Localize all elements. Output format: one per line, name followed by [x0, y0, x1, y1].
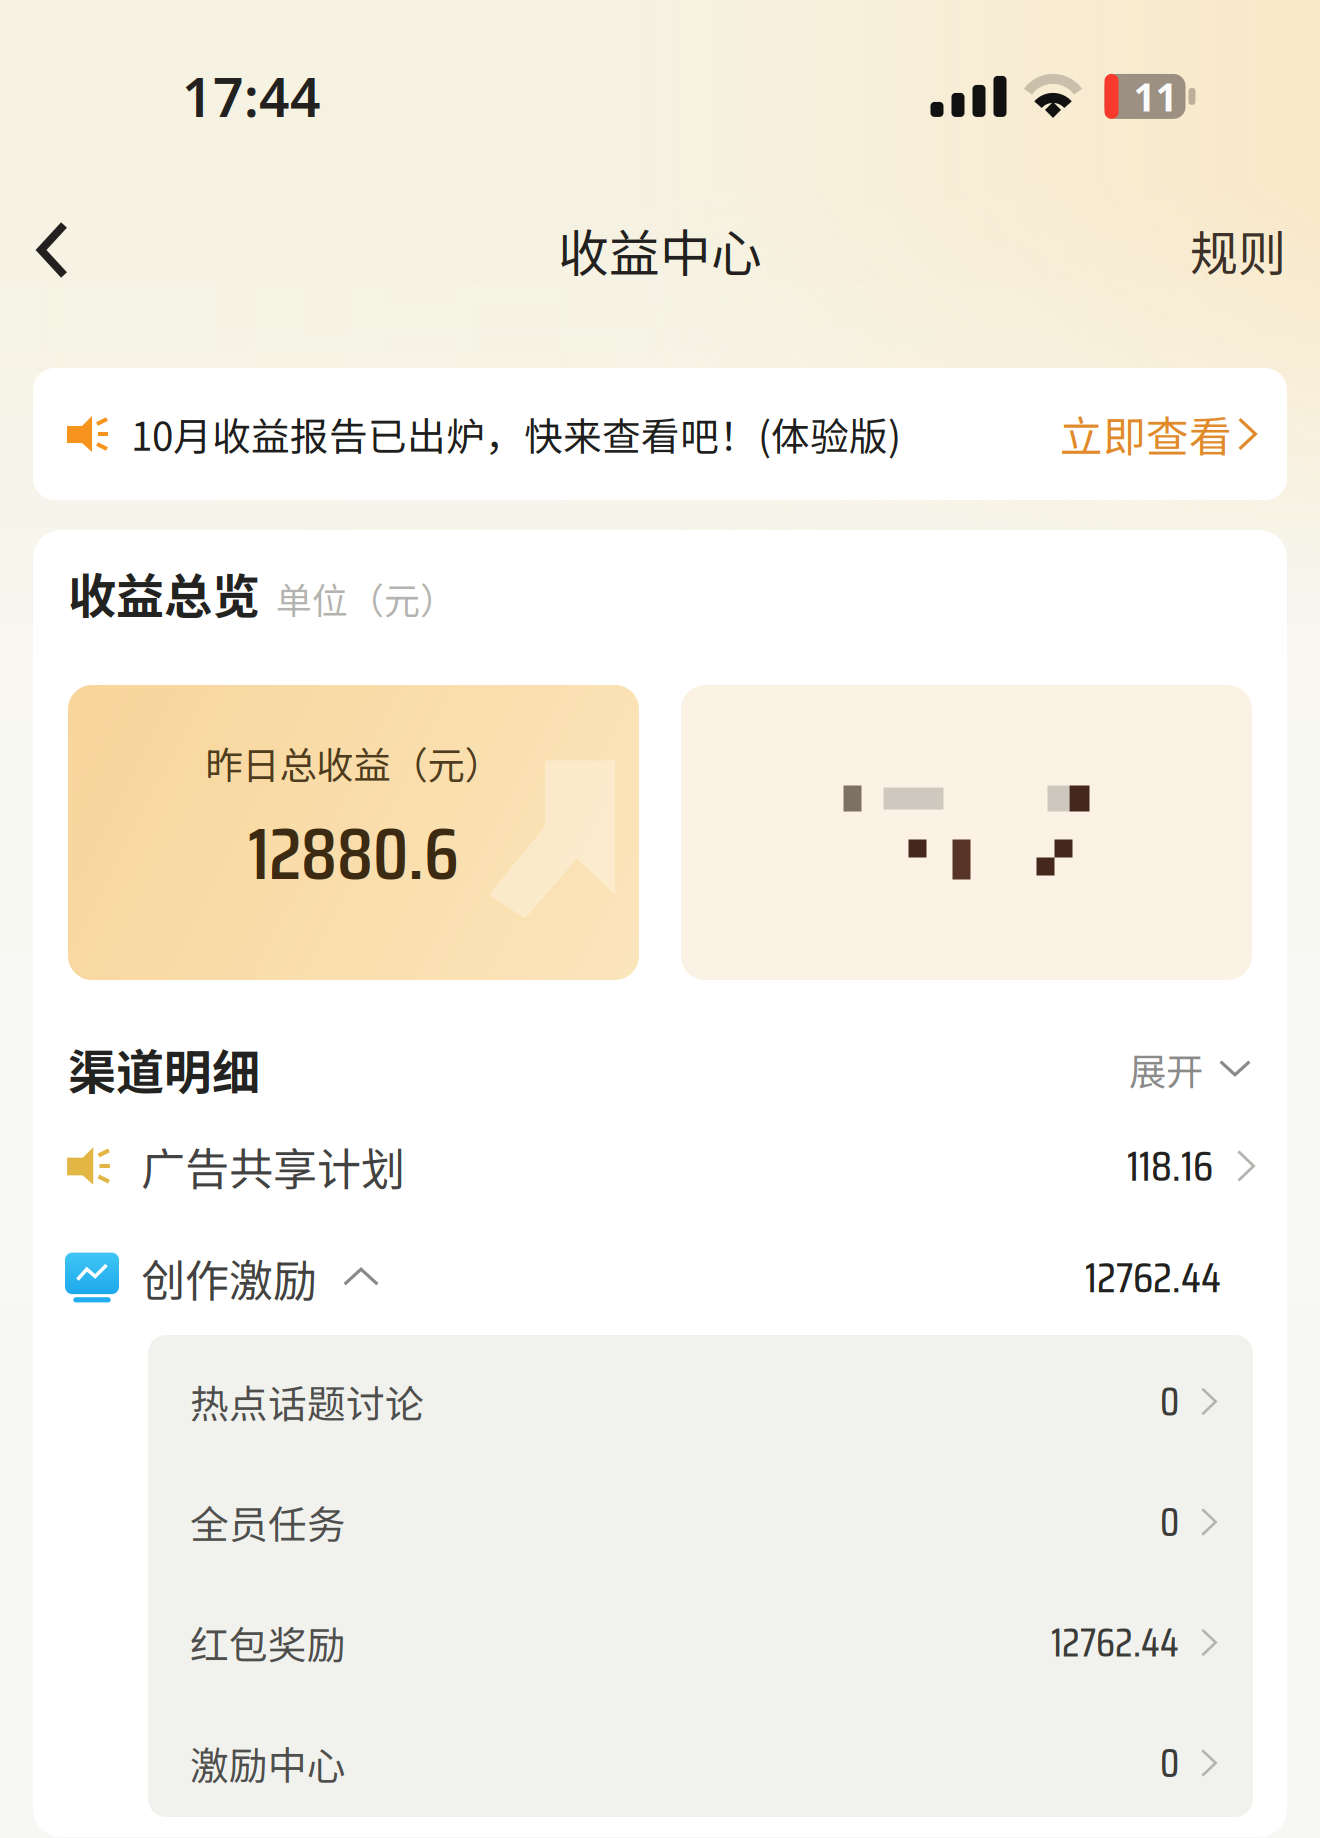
staticText: 收益总览	[68, 558, 260, 628]
staticText: 10月收益报告已出炉，快来查看吧！(体验版)	[131, 406, 901, 462]
button[interactable]: 10月收益报告已出炉，快来查看吧！(体验版)	[0, 368, 1320, 500]
button[interactable]: 激励中心	[148, 1696, 1253, 1817]
staticText: 12880.6	[248, 796, 459, 911]
staticText: 12762.44	[1085, 1244, 1221, 1311]
staticText: 立即查看	[1060, 403, 1232, 465]
staticText: 单位（元）	[276, 572, 456, 624]
staticText: 展开	[1129, 1042, 1203, 1096]
staticText: 118.16	[1127, 1132, 1213, 1200]
staticText: 17:44	[182, 61, 321, 132]
staticText: 规则	[1190, 215, 1286, 285]
button[interactable]: 创作激励	[33, 1220, 1287, 1335]
button[interactable]: 广告共享计划	[33, 1112, 1287, 1220]
staticText: 热点话题讨论	[190, 1373, 424, 1429]
staticText: 收益中心	[558, 213, 762, 287]
staticText: 创作激励	[141, 1246, 317, 1309]
staticText: 12762.44	[1051, 1611, 1179, 1674]
staticText: 红包奖励	[190, 1614, 346, 1670]
staticText: 昨日总收益（元）	[205, 736, 501, 790]
staticText: 0	[1160, 1490, 1179, 1553]
button[interactable]: 全员任务	[148, 1455, 1253, 1576]
staticText: 激励中心	[190, 1735, 346, 1791]
button[interactable]: 展开	[1129, 1034, 1251, 1104]
staticText: 渠道明细	[68, 1034, 260, 1104]
staticText: 0	[1160, 1370, 1179, 1433]
button[interactable]: 热点话题讨论	[148, 1335, 1253, 1455]
button[interactable]: 红包奖励	[148, 1576, 1253, 1696]
staticText: 全员任务	[190, 1494, 346, 1550]
button[interactable]: 规则	[1176, 195, 1300, 305]
staticText: 广告共享计划	[141, 1134, 405, 1198]
staticText: 11	[1133, 71, 1177, 122]
button[interactable]: 返回	[18, 195, 87, 305]
staticText: 0	[1160, 1731, 1179, 1794]
